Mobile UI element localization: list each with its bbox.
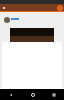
button[interactable]: Home [22, 89, 43, 100]
button[interactable]: Post [57, 5, 63, 11]
button[interactable]: Close [1, 5, 7, 11]
button[interactable]: Recents [43, 89, 64, 100]
button[interactable]: Back [0, 89, 22, 100]
